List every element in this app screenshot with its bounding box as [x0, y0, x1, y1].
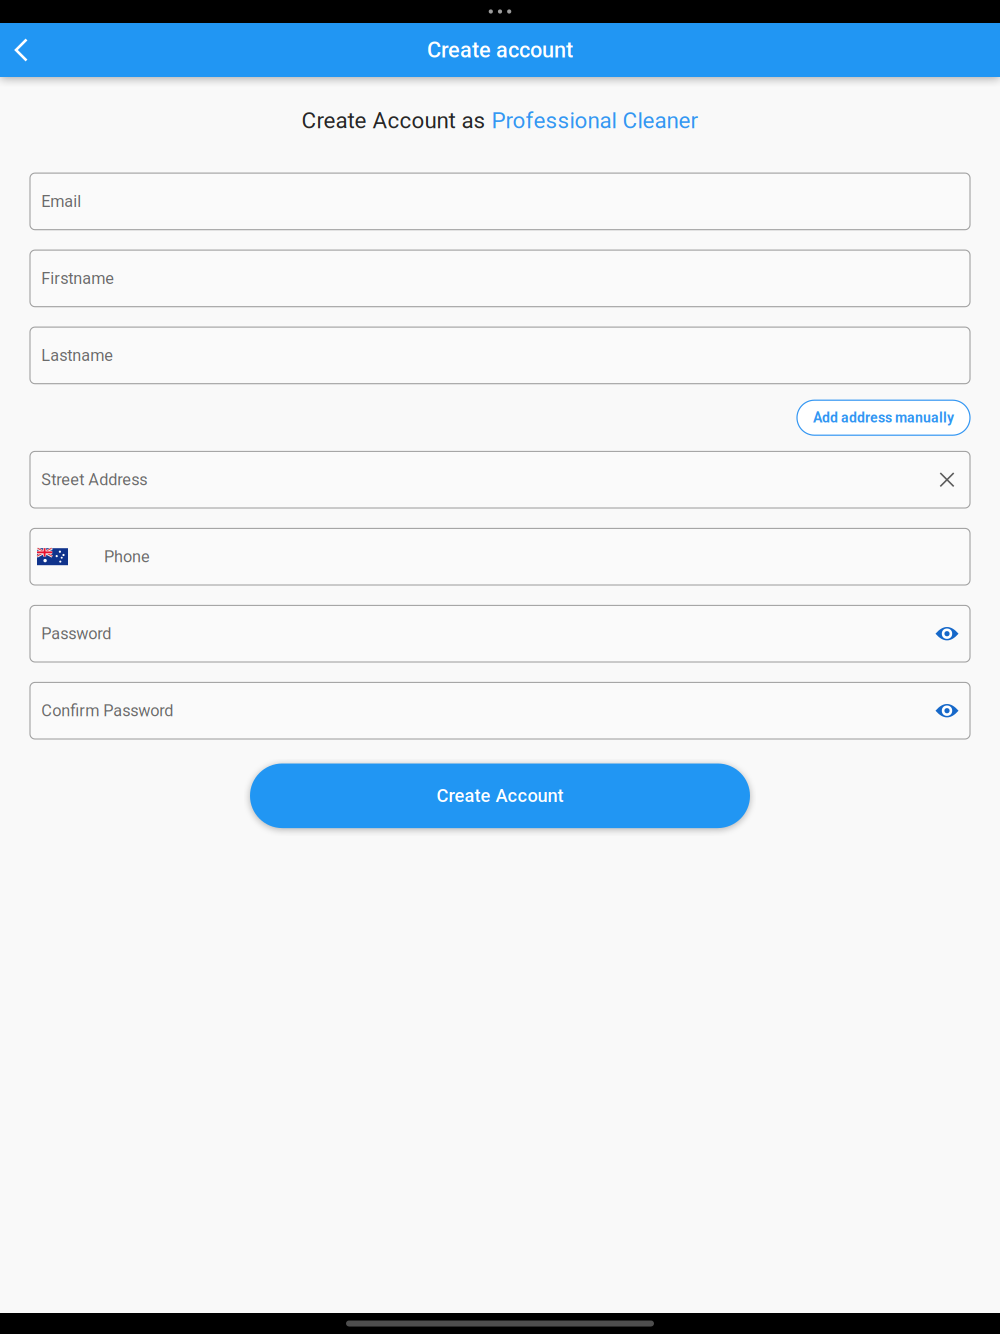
- button[interactable]: Password: [30, 605, 970, 662]
- button[interactable]: Street Address: [30, 451, 970, 508]
- staticText: Password: [41, 624, 111, 643]
- button[interactable]: Confirm Password: [30, 682, 970, 739]
- button[interactable]: Show password: [928, 615, 966, 653]
- staticText: Street Address: [41, 470, 147, 489]
- staticText: Create Account: [436, 785, 563, 806]
- button[interactable]: Email: [30, 173, 970, 230]
- button[interactable]: Phone: [30, 528, 970, 585]
- staticText: Create Account as: [301, 107, 491, 134]
- button[interactable]: Create Account: [250, 763, 750, 828]
- button[interactable]: Add address manually: [797, 400, 970, 435]
- staticText: Professional Cleaner: [491, 107, 698, 134]
- staticText: Firstname: [41, 269, 114, 288]
- button[interactable]: Firstname: [30, 250, 970, 307]
- staticText: Confirm Password: [41, 701, 173, 720]
- button[interactable]: Show confirm password: [928, 692, 966, 730]
- staticText: Phone: [104, 547, 150, 566]
- button[interactable]: Back: [0, 23, 56, 77]
- staticText: Lastname: [41, 346, 113, 365]
- button[interactable]: Lastname: [30, 327, 970, 384]
- staticText: Email: [41, 192, 81, 211]
- staticText: Add address manually: [813, 409, 954, 426]
- staticText: Create account: [427, 37, 573, 63]
- button[interactable]: Clear address: [928, 461, 966, 499]
